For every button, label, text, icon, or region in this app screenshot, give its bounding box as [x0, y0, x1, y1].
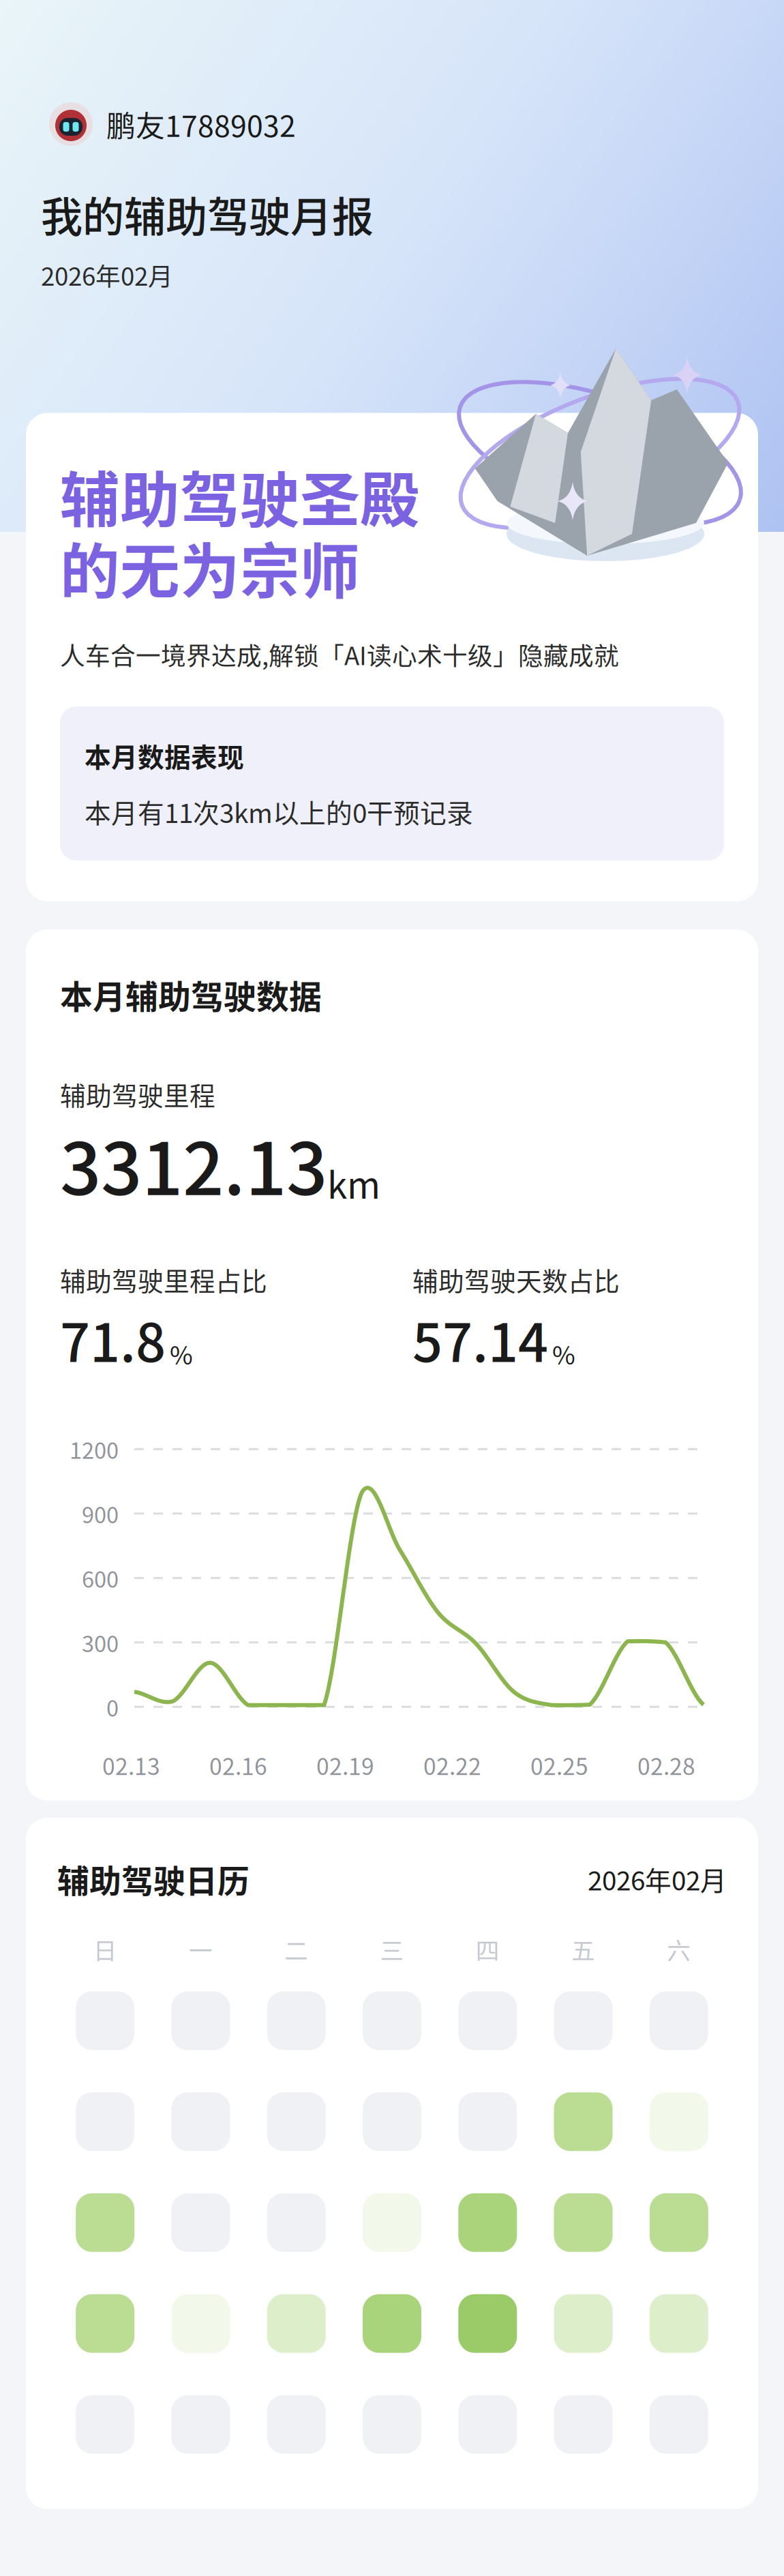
staticText: 辅助驾驶天数占比 — [412, 1261, 620, 1298]
staticText: 鹏友17889032 — [106, 103, 296, 145]
staticText: 日 — [93, 1932, 117, 1966]
staticText: 本月数据表现 — [85, 736, 244, 775]
staticText: 的无为宗师 — [60, 524, 360, 610]
staticText: 0 — [106, 1691, 119, 1723]
staticText: 四 — [476, 1932, 500, 1966]
staticText: 人车合一境界达成,解锁「AI读心术十级」隐藏成就 — [60, 636, 619, 672]
staticText: km — [327, 1157, 380, 1209]
staticText: 本月辅助驾驶数据 — [60, 971, 322, 1018]
staticText: 辅助驾驶里程 — [60, 1076, 215, 1113]
staticText: 02.16 — [209, 1748, 267, 1782]
staticText: 3312.13 — [60, 1111, 327, 1216]
staticText: % — [170, 1336, 193, 1372]
staticText: 五 — [571, 1932, 595, 1966]
staticText: 一 — [189, 1932, 213, 1966]
staticText: % — [552, 1336, 575, 1372]
staticText: 57.14 — [412, 1301, 548, 1377]
staticText: 600 — [82, 1562, 119, 1594]
staticText: 300 — [82, 1626, 119, 1659]
staticText: 2026年02月 — [588, 1860, 727, 1898]
staticText: 1200 — [70, 1433, 119, 1465]
staticText: 辅助驾驶圣殿 — [60, 452, 420, 539]
staticText: 六 — [667, 1932, 691, 1966]
staticText: 02.19 — [316, 1748, 374, 1782]
staticText: 71.8 — [60, 1301, 166, 1377]
staticText: 02.25 — [530, 1748, 588, 1782]
staticText: 本月有11次3km以上的0干预记录 — [85, 792, 473, 831]
staticText: 02.28 — [637, 1748, 695, 1782]
staticText: 02.22 — [423, 1748, 481, 1782]
staticText: 我的辅助驾驶月报 — [41, 184, 374, 244]
staticText: 2026年02月 — [41, 257, 173, 293]
staticText: 三 — [380, 1932, 404, 1966]
staticText: 二 — [284, 1932, 308, 1966]
staticText: 辅助驾驶里程占比 — [60, 1261, 267, 1298]
staticText: 900 — [82, 1497, 119, 1530]
staticText: 02.13 — [102, 1748, 160, 1782]
staticText: 辅助驾驶日历 — [57, 1856, 250, 1902]
